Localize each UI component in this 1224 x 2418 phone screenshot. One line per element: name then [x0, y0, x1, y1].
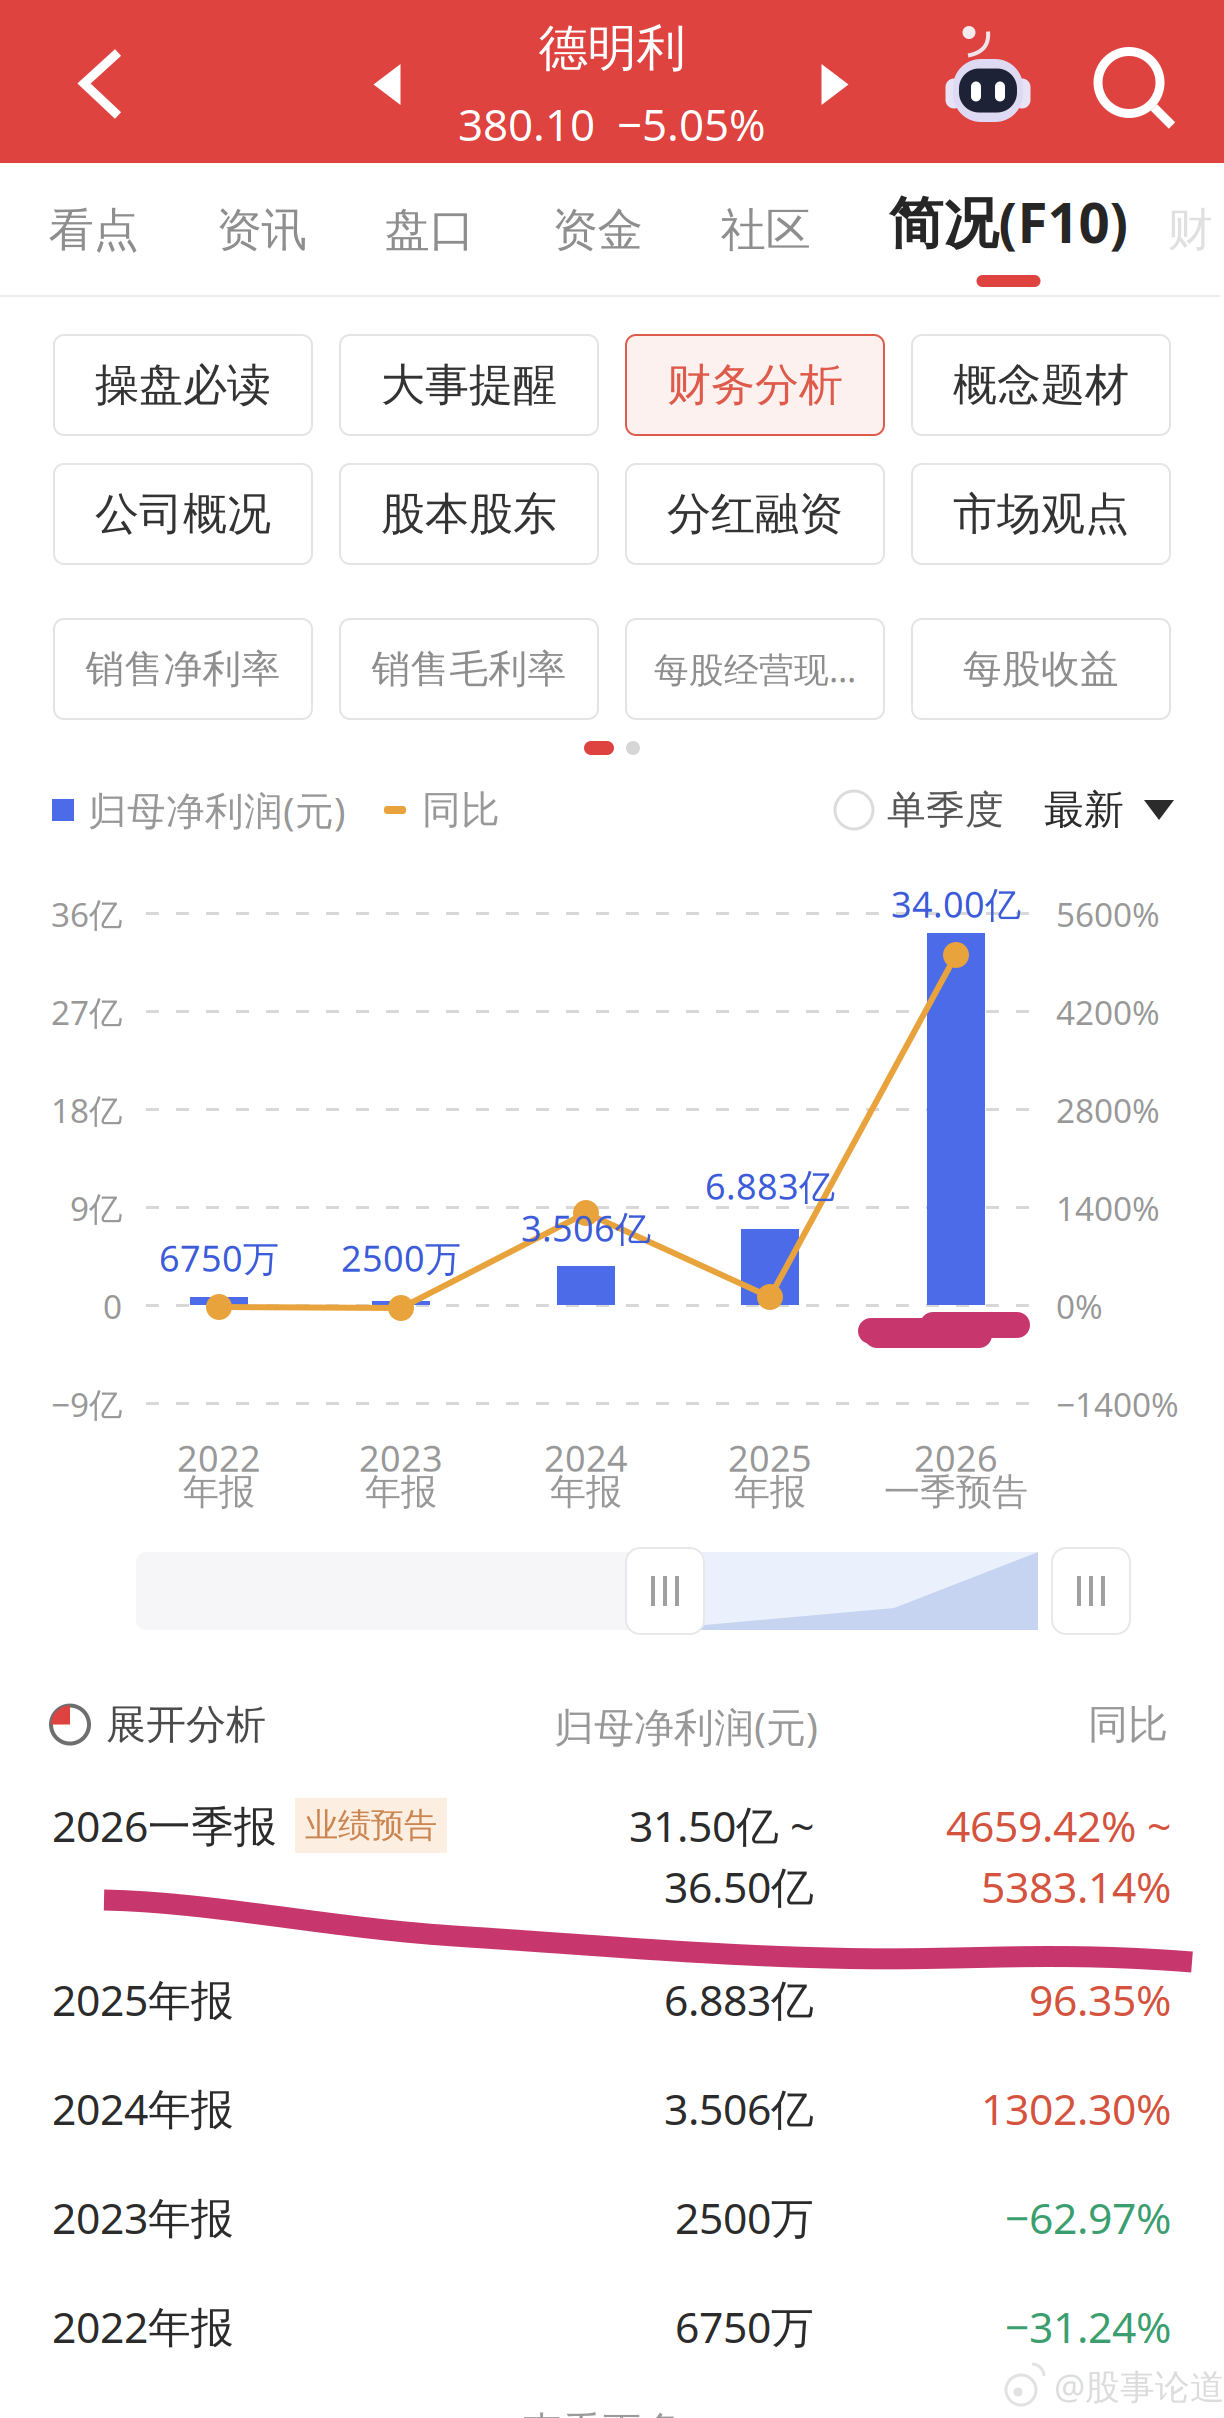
staticText: 最新 [1044, 785, 1124, 834]
button[interactable]: Back [36, 19, 166, 149]
staticText: 3.506亿 [664, 2080, 814, 2137]
button[interactable]: 公司概况 [54, 464, 312, 564]
staticText: 6750万 [159, 1234, 279, 1282]
staticText: 6.883亿 [664, 1971, 814, 2028]
staticText: 5383.14% [981, 1858, 1171, 1915]
staticText: 概念题材 [953, 358, 1129, 412]
staticText: 6750万 [675, 2298, 814, 2355]
staticText: 2026 [914, 1434, 998, 1482]
staticText: 年报 [183, 1470, 255, 1514]
button[interactable]: Adjust range [1052, 1548, 1130, 1634]
staticText: 380.10 −5.05% [458, 95, 766, 153]
staticText: 同比 [422, 786, 500, 834]
staticText: 2025 [728, 1434, 812, 1482]
staticText: 年报 [550, 1470, 622, 1514]
staticText: 分红融资 [667, 487, 843, 541]
staticText: 3.506亿 [521, 1204, 651, 1252]
staticText: 18亿 [51, 1088, 122, 1132]
staticText: 操盘必读 [95, 358, 271, 412]
staticText: 归母净利润(元) [554, 1700, 818, 1753]
button[interactable]: 市场观点 [912, 464, 1170, 564]
staticText: 2500万 [341, 1234, 461, 1282]
staticText: 每股收益 [963, 645, 1119, 693]
staticText: 资金 [552, 202, 642, 258]
button[interactable]: 2025年报 [0, 1944, 1224, 2053]
staticText: −1400% [1056, 1382, 1179, 1426]
button[interactable]: 看点 [9, 163, 177, 297]
staticText: 27亿 [51, 990, 122, 1034]
staticText: 0 [103, 1284, 122, 1328]
staticText: 2500万 [675, 2189, 814, 2246]
button[interactable]: 简况(F10) [849, 163, 1167, 297]
staticText: 公司概况 [95, 487, 271, 541]
button[interactable]: 2024年报 [0, 2053, 1224, 2162]
button[interactable]: AI Assistant [933, 27, 1043, 147]
staticText: 业绩预告 [305, 1805, 437, 1846]
button[interactable]: 销售毛利率 [340, 619, 598, 719]
button[interactable]: 每股经营现... [626, 619, 884, 719]
button[interactable]: 单季度 [835, 786, 1004, 834]
staticText: 社区 [720, 202, 810, 258]
staticText: 市场观点 [953, 487, 1129, 541]
staticText: 单季度 [887, 786, 1004, 834]
button[interactable]: 每股收益 [912, 619, 1170, 719]
button[interactable]: 2026一季报 [0, 1770, 1224, 1944]
button[interactable]: 查看更多 [0, 2402, 1224, 2418]
staticText: 5600% [1056, 892, 1160, 936]
button[interactable]: 盘口 [345, 163, 513, 297]
staticText: 查看更多 [522, 2407, 682, 2418]
staticText: 36.50亿 [664, 1858, 814, 1915]
button[interactable]: 销售净利率 [54, 619, 312, 719]
staticText: 31.50亿 ~ [629, 1797, 814, 1854]
staticText: 资讯 [216, 202, 306, 258]
staticText: 盘口 [384, 202, 474, 258]
staticText: 4200% [1056, 990, 1160, 1034]
staticText: 2023 [359, 1434, 443, 1482]
staticText: −62.97% [1005, 2189, 1171, 2246]
button[interactable]: 分红融资 [626, 464, 884, 564]
button[interactable]: 操盘必读 [54, 335, 312, 435]
staticText: 销售净利率 [85, 645, 280, 693]
staticText: 2024年报 [52, 2080, 234, 2137]
button[interactable]: 最新 [1044, 785, 1174, 834]
staticText: 2022 [177, 1434, 261, 1482]
button[interactable]: Next stock [785, 34, 885, 134]
staticText: 1400% [1056, 1186, 1160, 1230]
staticText: 归母净利润(元) [88, 784, 346, 836]
staticText: 年报 [365, 1470, 437, 1514]
button[interactable]: 财务分析 [626, 335, 884, 435]
staticText: 6.883亿 [705, 1162, 835, 1210]
button[interactable]: 大事提醒 [340, 335, 598, 435]
staticText: 股本股东 [381, 487, 557, 541]
staticText: @股事论道 [1054, 2363, 1224, 2409]
button[interactable]: 社区 [681, 163, 849, 297]
button[interactable]: 2022年报 [0, 2271, 1224, 2380]
staticText: 9亿 [70, 1186, 122, 1230]
button[interactable]: 2023年报 [0, 2162, 1224, 2271]
staticText: −9亿 [51, 1382, 122, 1426]
staticText: 4659.42% ~ [946, 1797, 1171, 1854]
staticText: 34.00亿 [891, 880, 1021, 928]
button[interactable]: Search [1077, 24, 1187, 144]
staticText: 展开分析 [106, 1700, 266, 1749]
staticText: 财务分析 [667, 358, 843, 412]
staticText: 一季预告 [884, 1470, 1028, 1514]
staticText: 同比 [1088, 1700, 1168, 1749]
button[interactable]: 股本股东 [340, 464, 598, 564]
button[interactable]: 资金 [513, 163, 681, 297]
staticText: 看点 [48, 202, 138, 258]
button[interactable]: Adjust range [626, 1548, 704, 1634]
button[interactable]: 资讯 [177, 163, 345, 297]
staticText: 财 [1167, 202, 1212, 258]
staticText: 2800% [1056, 1088, 1160, 1132]
staticText: 年报 [734, 1470, 806, 1514]
button[interactable]: 概念题材 [912, 335, 1170, 435]
staticText: 0% [1056, 1284, 1103, 1328]
staticText: 2024 [544, 1434, 628, 1482]
staticText: 大事提醒 [381, 358, 557, 412]
staticText: 德明利 [538, 18, 685, 79]
staticText: 2025年报 [52, 1971, 234, 2028]
staticText: 2023年报 [52, 2189, 234, 2246]
button[interactable]: Previous stock [337, 34, 437, 134]
staticText: −31.24% [1005, 2298, 1171, 2355]
